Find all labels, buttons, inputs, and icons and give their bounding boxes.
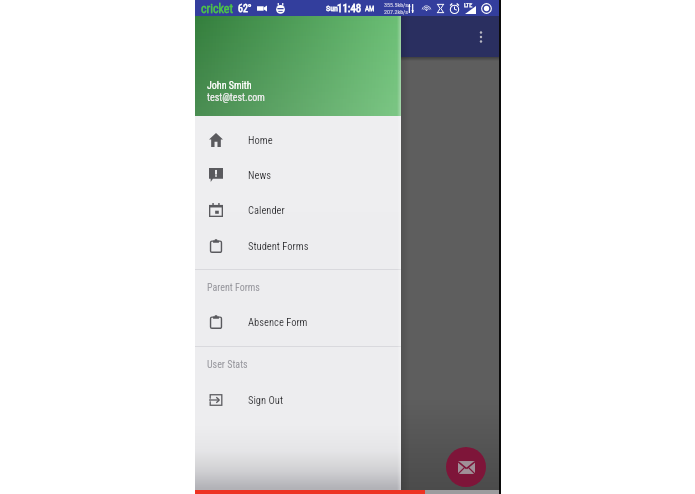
button[interactable]: Student Forms [195,228,401,263]
button[interactable]: Compose message [446,447,486,487]
staticText: Home [248,134,273,146]
staticText: User Stats [207,359,248,371]
staticText: cricket [201,2,233,16]
staticText: News [248,169,272,181]
staticText: Calender [248,204,285,216]
button[interactable]: Calender [195,192,401,227]
button[interactable]: Home [195,122,401,157]
staticText: 355.5kb/s [384,1,409,8]
staticText: Sign Out [248,394,284,406]
staticText: Student Forms [248,240,309,252]
button[interactable]: More options [470,26,492,48]
staticText: John Smith [207,80,252,92]
staticText: LTE [464,1,473,8]
button[interactable]: Sign Out [195,382,401,417]
staticText: 11:48 [337,2,362,15]
staticText: Sun [326,4,338,13]
button[interactable]: News [195,157,401,192]
staticText: test@test.com [207,92,265,104]
staticText: 207.2kb/s [384,8,409,15]
staticText: 62° [238,3,252,15]
staticText: Parent Forms [207,282,260,294]
button[interactable]: Absence Form [195,304,401,339]
staticText: Absence Form [248,316,308,328]
staticText: AM [365,5,375,13]
